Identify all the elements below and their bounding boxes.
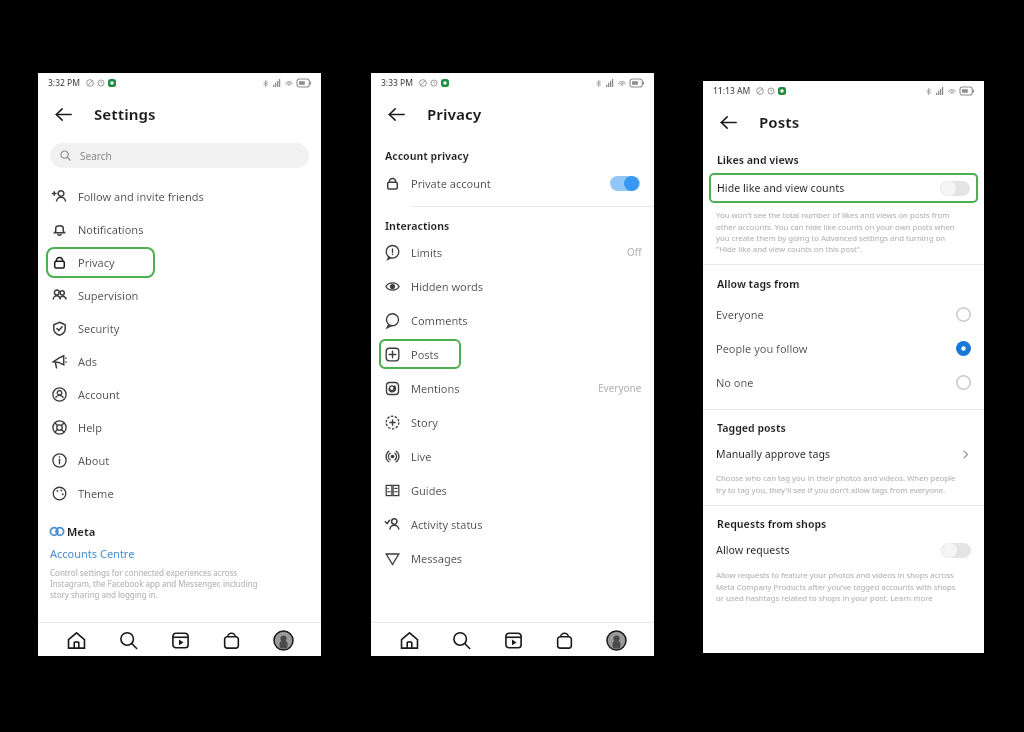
staticText: Manually approve tags [716, 447, 831, 461]
button[interactable]: Follow and invite friends [38, 180, 321, 213]
staticText: Posts [759, 112, 800, 132]
staticText: Limits [411, 245, 442, 260]
button[interactable]: Accounts Centre [50, 546, 135, 561]
staticText: Security [78, 321, 120, 336]
staticText: Meta [67, 524, 96, 539]
button[interactable]: Back [48, 99, 78, 129]
button[interactable]: Hide like and view counts [709, 173, 978, 203]
staticText: Likes and views [717, 153, 799, 167]
button[interactable]: Posts [371, 337, 654, 371]
staticText: Posts [411, 347, 439, 362]
staticText: Private account [411, 176, 491, 191]
staticText: Hidden words [411, 279, 484, 294]
button[interactable]: Back [381, 99, 411, 129]
button[interactable]: Everyone [703, 297, 984, 331]
staticText: Allow requests to feature your photos an… [716, 570, 956, 603]
staticText: Allow tags from [717, 277, 800, 291]
button[interactable]: Reels [166, 626, 194, 654]
staticText: People you follow [716, 341, 808, 356]
staticText: Tagged posts [717, 421, 786, 435]
staticText: Story [411, 415, 438, 430]
staticText: Theme [78, 486, 114, 501]
staticText: Account privacy [385, 149, 469, 163]
staticText: Control settings for connected experienc… [50, 567, 258, 600]
button[interactable]: No one [703, 365, 984, 399]
button[interactable]: Help [38, 411, 321, 444]
staticText: Comments [411, 313, 468, 328]
staticText: Settings [94, 104, 156, 124]
button[interactable]: Live [371, 439, 654, 473]
button[interactable]: Theme [38, 477, 321, 510]
staticText: You won't see the total number of likes … [716, 210, 955, 254]
button[interactable]: Toggle [610, 176, 640, 191]
button[interactable]: Mentions [371, 371, 654, 405]
staticText: Account [78, 387, 120, 402]
staticText: Requests from shops [717, 517, 827, 531]
staticText: Messages [411, 551, 463, 566]
button[interactable]: Home [62, 626, 90, 654]
staticText: Ads [78, 354, 98, 369]
button[interactable]: Security [38, 312, 321, 345]
staticText: Activity status [411, 517, 483, 532]
button[interactable]: Search [50, 143, 309, 168]
staticText: No one [716, 375, 754, 390]
button[interactable]: Supervision [38, 279, 321, 312]
staticText: 3:33 PM [381, 77, 414, 89]
staticText: Choose who can tag you in their photos a… [716, 473, 956, 495]
button[interactable]: Toggle [941, 543, 971, 558]
button[interactable]: Back [713, 107, 743, 137]
button[interactable]: Messages [371, 541, 654, 575]
staticText: Hide like and view counts [717, 181, 845, 195]
staticText: Search [80, 149, 112, 163]
button[interactable]: Search [447, 626, 475, 654]
staticText: Help [78, 420, 102, 435]
button[interactable]: Shop [217, 626, 245, 654]
button[interactable]: Search [114, 626, 142, 654]
staticText: Live [411, 449, 432, 464]
button[interactable]: Home [395, 626, 423, 654]
staticText: Allow requests [716, 543, 790, 557]
staticText: Interactions [385, 219, 450, 233]
staticText: Follow and invite friends [78, 189, 204, 204]
button[interactable]: Profile [269, 626, 297, 654]
button[interactable]: Guides [371, 473, 654, 507]
button[interactable]: Notifications [38, 213, 321, 246]
button[interactable]: Profile [602, 626, 630, 654]
button[interactable]: Allow requests [703, 535, 984, 565]
button[interactable]: Limits [371, 235, 654, 269]
button[interactable]: Private account [371, 167, 654, 199]
button[interactable]: Account [38, 378, 321, 411]
button[interactable]: Shop [550, 626, 578, 654]
staticText: Notifications [78, 222, 144, 237]
button[interactable]: About [38, 444, 321, 477]
staticText: About [78, 453, 110, 468]
button[interactable]: Story [371, 405, 654, 439]
staticText: Everyone [598, 381, 642, 395]
button[interactable]: Reels [499, 626, 527, 654]
staticText: Mentions [411, 381, 460, 396]
staticText: Privacy [78, 255, 115, 270]
staticText: 3:32 PM [48, 77, 81, 89]
button[interactable]: Activity status [371, 507, 654, 541]
staticText: Supervision [78, 288, 139, 303]
staticText: Guides [411, 483, 447, 498]
button[interactable]: Comments [371, 303, 654, 337]
staticText: Everyone [716, 307, 764, 322]
button[interactable]: People you follow [703, 331, 984, 365]
staticText: Off [627, 245, 642, 259]
staticText: 11:13 AM [713, 85, 751, 97]
button[interactable]: Hidden words [371, 269, 654, 303]
button[interactable]: Toggle [940, 181, 970, 196]
button[interactable]: Manually approve tags [703, 439, 984, 469]
button[interactable]: Privacy [38, 246, 321, 279]
staticText: Privacy [427, 104, 482, 124]
button[interactable]: Ads [38, 345, 321, 378]
staticText: Accounts Centre [50, 546, 135, 561]
